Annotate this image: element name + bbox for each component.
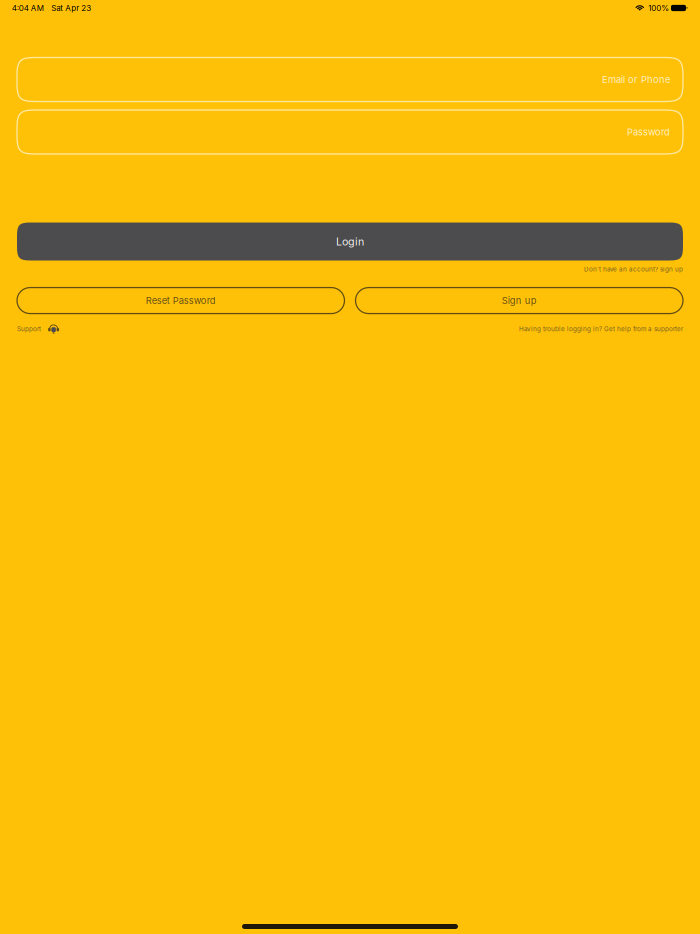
staticText: 4:04 AM: [12, 3, 44, 13]
staticText: Login: [336, 235, 364, 248]
staticText: Password: [627, 126, 670, 138]
staticText: Sign up: [502, 295, 537, 306]
staticText: 100%: [648, 3, 669, 13]
staticText: Support: [17, 325, 41, 333]
staticText: Sat Apr 23: [51, 3, 91, 13]
button[interactable]: Having trouble logging in? Get help from…: [519, 325, 683, 333]
button[interactable]: Login: [17, 222, 683, 260]
button[interactable]: Support: [17, 324, 59, 334]
button[interactable]: Password: [17, 110, 683, 154]
button[interactable]: Sign up: [355, 288, 683, 314]
staticText: Having trouble logging in? Get help from…: [519, 325, 683, 333]
button[interactable]: Reset Password: [17, 288, 344, 314]
staticText: Email or Phone: [602, 74, 670, 85]
button[interactable]: Email or Phone: [17, 57, 683, 101]
staticText: Reset Password: [146, 295, 216, 306]
staticText: Don't have an account? sign up: [584, 265, 683, 273]
button[interactable]: Don't have an account? sign up: [584, 265, 683, 273]
